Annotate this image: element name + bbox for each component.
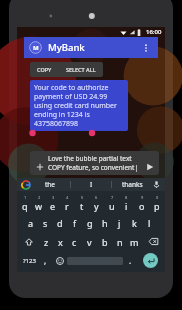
staticText: k [132,217,137,229]
button[interactable]: c [67,232,82,251]
button[interactable]: 3 [46,194,60,213]
staticText: 1 [24,195,27,200]
button[interactable]: Enter [143,253,158,268]
staticText: the [45,180,56,189]
button[interactable]: I [71,178,111,191]
button[interactable]: Send [144,161,155,172]
button[interactable]: 8 [119,194,134,213]
button[interactable]: g [82,213,97,232]
button[interactable]: the [30,178,70,191]
button[interactable]: 7 [104,194,119,213]
staticText: e [50,200,56,212]
staticText: ?123 [23,257,36,265]
button[interactable]: 4 [60,194,74,213]
staticText: d [57,217,63,229]
staticText: t [80,200,84,212]
staticText: n [117,236,123,248]
button[interactable]: z [39,232,53,251]
button[interactable]: v [82,232,97,251]
button[interactable]: Voice input [152,180,161,189]
staticText: o [139,200,145,212]
button[interactable]: Google [21,180,30,189]
staticText: 9 [141,195,144,200]
staticText: thanks [122,180,143,189]
staticText: SELECT ALL [66,66,96,73]
staticText: Love the bubble partial text COPY featur… [48,154,141,172]
button[interactable]: 2 [32,194,46,213]
button[interactable]: m [127,232,142,251]
staticText: f [73,217,77,229]
button[interactable]: l [142,213,157,232]
button[interactable]: h [97,213,112,232]
staticText: r [65,200,69,212]
button[interactable]: SELECT ALL [59,62,103,77]
staticText: a [28,217,34,229]
button[interactable]: 5 [74,194,89,213]
button[interactable]: 6 [89,194,104,213]
staticText: 3 [52,195,55,200]
staticText: x [58,236,63,248]
button[interactable]: 9 [134,194,149,213]
button[interactable]: M [29,37,153,58]
button[interactable]: k [127,213,142,232]
button[interactable]: COPY [30,62,59,77]
button[interactable]: ?123 [19,251,39,270]
staticText: q [22,200,28,212]
staticText: . [129,255,132,266]
button[interactable]: n [112,232,127,251]
button[interactable]: d [52,213,67,232]
button[interactable]: a [24,213,38,232]
staticText: u [109,200,115,212]
staticText: , [44,255,47,266]
staticText: m [130,236,139,248]
staticText: z [44,236,49,248]
button[interactable]: thanks [112,178,152,191]
staticText: COPY [37,66,52,73]
staticText: y [94,200,99,212]
staticText: p [154,200,160,212]
button[interactable]: More options [139,41,153,55]
staticText: 6 [95,195,98,200]
button[interactable]: f [67,213,82,232]
button[interactable]: j [112,213,127,232]
button[interactable]: Add attachment [30,151,159,175]
staticText: MyBank [48,41,85,54]
button[interactable]: 0 [149,194,164,213]
button[interactable]: Add attachment [34,161,45,172]
staticText: h [102,217,108,229]
staticText: 0 [156,195,159,200]
staticText: i [125,200,128,212]
staticText: 16:00 [146,28,162,36]
button[interactable]: x [53,232,67,251]
staticText: 4 [66,195,69,200]
staticText: g [87,217,93,229]
staticText: M [33,44,39,52]
staticText: 5 [81,195,84,200]
staticText: 7 [111,195,114,200]
button[interactable]: s [38,213,52,232]
staticText: Your code to authorize payment of USD 24… [34,83,124,128]
staticText: I [90,180,93,189]
button[interactable]: Your code to authorize payment of USD 24… [30,80,128,131]
staticText: j [118,217,121,229]
staticText: w [35,200,43,212]
button[interactable]: Backspace [142,232,164,251]
staticText: c [72,236,77,248]
button[interactable]: Emoji [52,251,67,270]
button[interactable]: 1 [18,194,32,213]
staticText: 2 [38,195,41,200]
staticText: b [102,236,108,248]
button[interactable]: b [97,232,112,251]
staticText: 8 [125,195,128,200]
button[interactable]: . [123,251,138,270]
staticText: s [43,217,48,229]
button[interactable]: Shift [18,232,39,251]
staticText: v [87,236,92,248]
staticText: l [148,217,151,229]
button[interactable]: , [39,251,52,270]
